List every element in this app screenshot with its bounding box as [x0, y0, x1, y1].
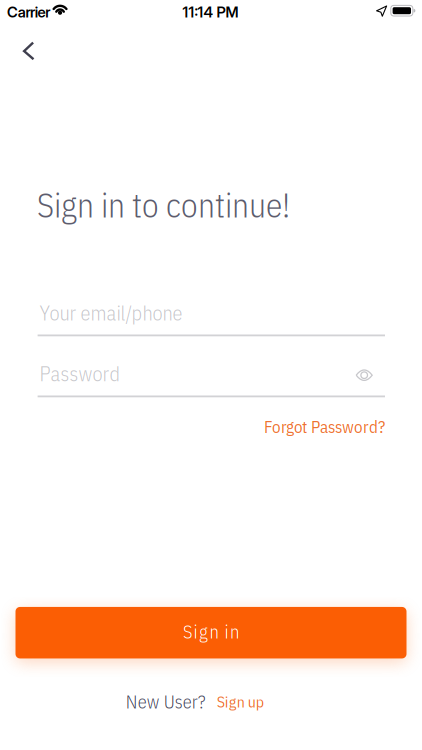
staticText: Password [39, 360, 120, 387]
staticText: g [199, 619, 208, 644]
staticText: Sign up [217, 691, 264, 712]
staticText: n [209, 619, 218, 644]
staticText: Carrier [7, 3, 50, 21]
button[interactable]: Forgot Password? [264, 416, 385, 438]
staticText: Sign in to continue! [37, 183, 290, 227]
staticText: i [225, 619, 229, 644]
button[interactable]: Back [7, 29, 51, 73]
staticText: i [193, 619, 197, 644]
staticText: New User? [126, 690, 206, 713]
staticText: 11:14 PM [182, 3, 238, 21]
button[interactable]: Show password [355, 369, 373, 382]
staticText: Your email/phone [39, 300, 182, 326]
button[interactable]: Sign in [15, 607, 406, 658]
staticText: S [183, 619, 192, 644]
staticText: Forgot Password? [264, 416, 385, 438]
button[interactable]: Sign up [217, 691, 264, 712]
staticText: n [230, 619, 239, 644]
